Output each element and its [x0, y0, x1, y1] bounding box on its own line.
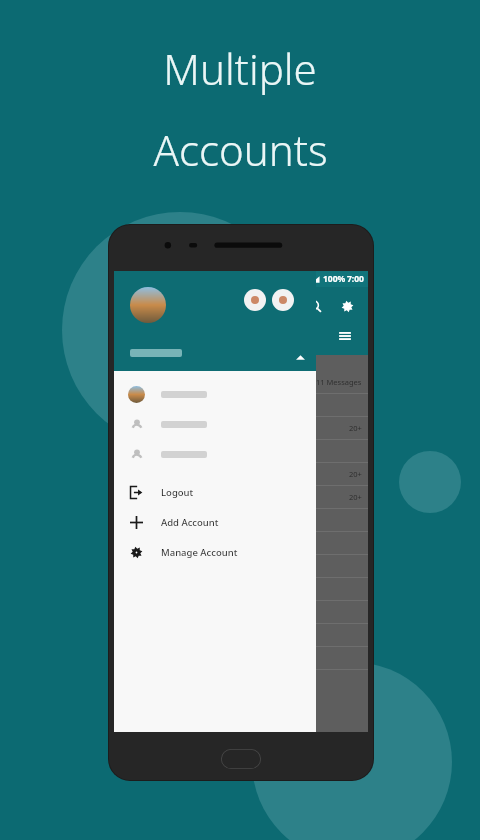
button[interactable]: Collapse accounts	[292, 349, 308, 365]
staticText: 20+	[349, 469, 362, 479]
staticText: Accounts	[153, 121, 328, 178]
staticText: 7:00	[347, 273, 364, 285]
button[interactable]: Settings	[334, 293, 360, 319]
button[interactable]: Manage Account	[114, 537, 316, 567]
staticText: 20+	[349, 423, 362, 433]
button[interactable]: Logout	[114, 477, 316, 507]
button[interactable]	[114, 379, 316, 409]
button[interactable]: Add Account	[114, 507, 316, 537]
button[interactable]	[114, 439, 316, 469]
staticText: 11 Messages	[316, 377, 362, 387]
staticText: Multiple	[163, 40, 317, 97]
staticText: 100%	[323, 273, 346, 285]
staticText: 20+	[349, 492, 362, 502]
button[interactable]: Account 3	[272, 289, 294, 311]
button[interactable]: Menu	[334, 325, 356, 347]
staticText: Logout	[161, 486, 194, 499]
button[interactable]: Search	[302, 293, 328, 319]
button[interactable]: Account 2	[244, 289, 266, 311]
staticText: Manage Account	[161, 546, 238, 559]
staticText: Add Account	[161, 516, 219, 529]
button[interactable]	[114, 409, 316, 439]
